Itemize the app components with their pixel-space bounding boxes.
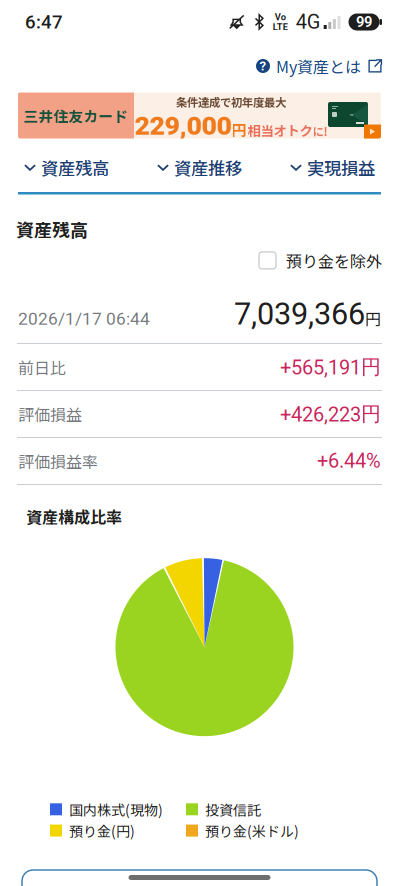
staticText: +426,223円 <box>280 401 381 427</box>
staticText: 資産残高 <box>16 216 88 242</box>
staticText: 条件達成で初年度最大 <box>176 94 286 110</box>
staticText: 相当オトク <box>247 120 312 140</box>
staticText: 資産構成比率 <box>26 505 122 528</box>
staticText: My資産とは <box>276 54 361 78</box>
staticText: 資産残高 <box>41 155 109 180</box>
staticText: ? <box>259 58 266 74</box>
staticText: LTE <box>273 21 288 32</box>
staticText: 6:47 <box>25 11 63 33</box>
staticText: 99 <box>356 13 372 31</box>
button[interactable]: 預り金を除外 <box>259 243 382 278</box>
staticText: 預り金を除外 <box>286 249 382 272</box>
staticText: 7,039,366 <box>234 296 365 332</box>
staticText: +6.44% <box>317 449 381 473</box>
staticText: 投資信託 <box>205 799 261 819</box>
button[interactable]: 三井住友カード <box>0 92 399 138</box>
staticText: 229,000 <box>134 110 231 141</box>
staticText: 国内株式(現物) <box>69 799 163 819</box>
staticText: 預り金(円) <box>69 820 135 841</box>
staticText: 評価損益 <box>18 402 82 426</box>
staticText: 円 <box>365 307 381 330</box>
staticText: 評価損益率 <box>18 449 98 473</box>
staticText: Vo <box>275 12 286 22</box>
staticText: 預り金(米ドル) <box>205 820 299 841</box>
staticText: 実現損益 <box>307 155 375 180</box>
staticText: +565,191円 <box>280 354 381 380</box>
button[interactable]: 資産推移 <box>133 143 266 192</box>
staticText: 前日比 <box>18 355 66 379</box>
button[interactable]: 実現損益 <box>266 143 399 192</box>
staticText: 4G <box>296 10 321 34</box>
staticText: 円 <box>231 118 246 140</box>
staticText: 2026/1/17 06:44 <box>18 309 150 329</box>
staticText: 三井住友カード <box>23 105 128 126</box>
staticText: に! <box>312 123 327 139</box>
button[interactable]: ? <box>256 46 382 86</box>
staticText: 資産推移 <box>174 155 242 180</box>
button[interactable]: 資産残高 <box>0 143 133 192</box>
